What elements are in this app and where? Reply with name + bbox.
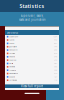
staticText: 167 bbox=[54, 76, 57, 78]
staticText: Sacek bbox=[9, 39, 14, 41]
staticText: 1 204 bbox=[53, 36, 57, 38]
staticText: Statistics bbox=[7, 31, 18, 34]
staticText: Sacks bbox=[9, 42, 14, 44]
button[interactable]: Bookmarks bbox=[5, 72, 59, 75]
staticText: 871 bbox=[54, 42, 57, 44]
staticText: superuser, sacek, bbox=[20, 14, 43, 17]
staticText: 612 bbox=[54, 52, 57, 54]
staticText: Journalism bbox=[9, 46, 16, 48]
button[interactable]: Archive bbox=[5, 52, 59, 55]
staticText: Superuser bbox=[9, 36, 18, 38]
staticText: sacks and journalism bbox=[19, 18, 45, 21]
staticText: Research bbox=[9, 49, 17, 51]
button[interactable]: Research bbox=[5, 48, 59, 52]
staticText: 214 bbox=[54, 73, 57, 74]
button[interactable]: Superuser bbox=[5, 35, 59, 38]
button[interactable]: Journalism bbox=[5, 45, 59, 48]
staticText: 548 bbox=[54, 56, 57, 58]
button[interactable]: View full report bbox=[5, 84, 59, 88]
button[interactable]: Sacek bbox=[5, 38, 59, 42]
staticText: 355 bbox=[54, 66, 57, 68]
staticText: Statistics bbox=[19, 2, 44, 10]
button[interactable]: Drafts bbox=[5, 62, 59, 65]
staticText: View full report bbox=[21, 84, 43, 88]
staticText: Reviews bbox=[9, 66, 15, 68]
staticText: Sources bbox=[9, 59, 16, 61]
staticText: Bookmarks bbox=[9, 73, 18, 74]
staticText: Archive bbox=[9, 52, 15, 54]
staticText: 118 bbox=[54, 79, 57, 81]
staticText: 401 bbox=[54, 63, 57, 64]
button[interactable]: Archive log bbox=[5, 79, 59, 82]
staticText: 298 bbox=[54, 69, 57, 71]
button[interactable]: Comments bbox=[5, 68, 59, 72]
staticText: Comments bbox=[9, 69, 16, 71]
staticText: Archive log bbox=[9, 79, 17, 81]
staticText: Drafts bbox=[9, 63, 13, 64]
staticText: 473 bbox=[54, 59, 57, 61]
button[interactable]: Sacks bbox=[5, 42, 59, 45]
button[interactable]: Reports bbox=[5, 55, 59, 58]
staticText: Exports bbox=[9, 76, 15, 78]
button[interactable]: Sources bbox=[5, 58, 59, 62]
button[interactable]: Exports bbox=[5, 75, 59, 79]
staticText: Reports bbox=[9, 56, 15, 58]
staticText: 744 bbox=[54, 46, 57, 48]
button[interactable]: Reviews bbox=[5, 65, 59, 69]
